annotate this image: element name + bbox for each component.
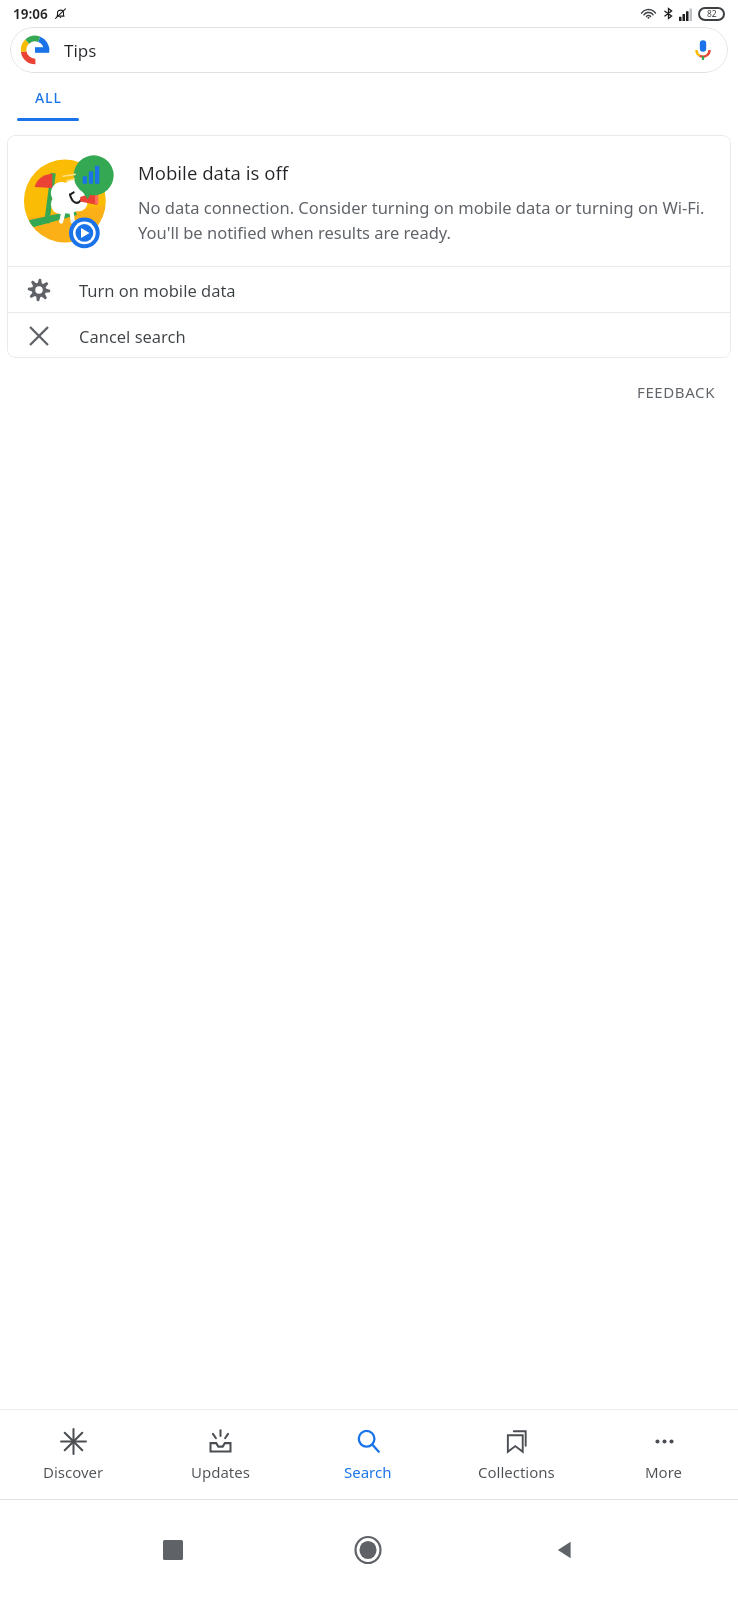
staticText: Tips xyxy=(64,39,97,62)
staticText: ALL xyxy=(35,88,62,107)
button[interactable]: Turn on mobile data xyxy=(7,267,731,312)
staticText: 82 xyxy=(707,8,717,20)
button[interactable]: Cancel search xyxy=(7,313,731,358)
staticText: Turn on mobile data xyxy=(79,279,236,301)
button[interactable]: Collections xyxy=(442,1410,590,1499)
button[interactable]: Recents xyxy=(151,1528,195,1572)
staticText: Discover xyxy=(43,1462,104,1482)
button[interactable]: Mobile data is off xyxy=(23,153,713,246)
button[interactable]: Updates xyxy=(147,1410,294,1499)
staticText: Updates xyxy=(191,1462,250,1482)
button[interactable]: More xyxy=(590,1410,738,1499)
button[interactable]: Home xyxy=(346,1528,390,1572)
staticText: No data connection. Consider turning on … xyxy=(138,196,713,243)
staticText: More xyxy=(645,1462,683,1482)
staticText: Cancel search xyxy=(79,325,186,347)
staticText: 19:06 xyxy=(13,5,48,23)
button[interactable]: Tips xyxy=(10,27,728,73)
button[interactable]: Back xyxy=(542,1528,586,1572)
button[interactable]: FEEDBACK xyxy=(631,376,722,408)
staticText: Collections xyxy=(478,1462,555,1482)
staticText: Search xyxy=(344,1462,392,1482)
other: Voice search xyxy=(692,39,714,61)
button[interactable]: Discover xyxy=(0,1410,147,1499)
button[interactable]: Search xyxy=(294,1410,442,1499)
button[interactable]: ALL xyxy=(14,73,82,121)
staticText: FEEDBACK xyxy=(637,382,716,402)
staticText: Mobile data is off xyxy=(138,160,289,185)
